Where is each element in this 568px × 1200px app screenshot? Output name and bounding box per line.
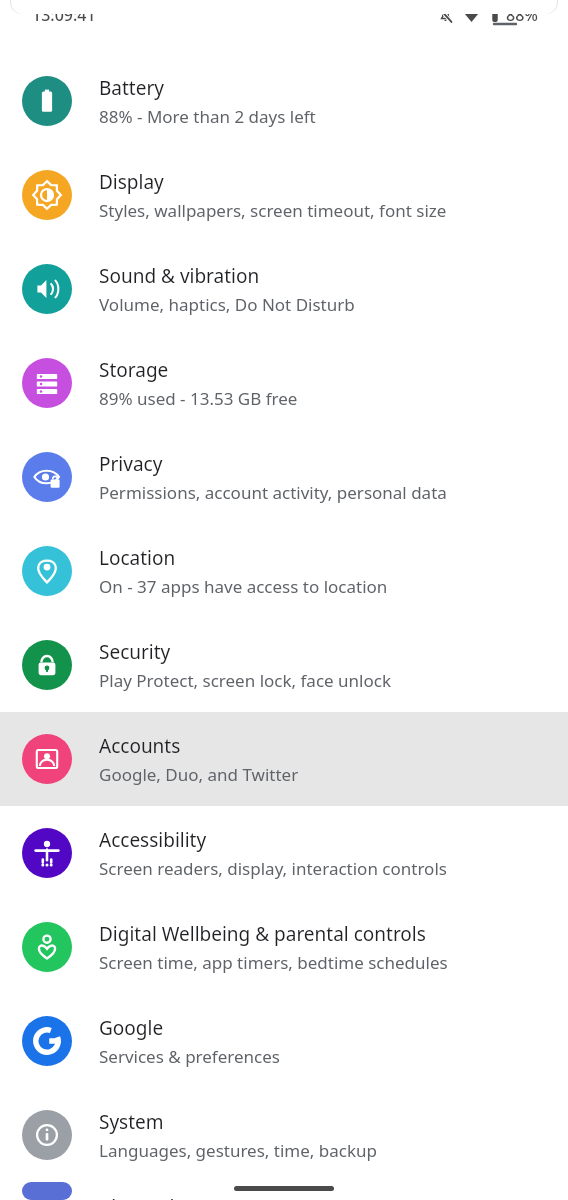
- button[interactable]: Privacy: [0, 430, 568, 524]
- staticText: System: [99, 1109, 164, 1135]
- staticText: Privacy: [99, 451, 163, 477]
- staticText: Screen time, app timers, bedtime schedul…: [99, 951, 448, 974]
- button[interactable]: System: [0, 1088, 568, 1182]
- staticText: Battery: [99, 75, 164, 101]
- staticText: 88%: [506, 4, 538, 26]
- staticText: 88% - More than 2 days left: [99, 105, 316, 128]
- staticText: Languages, gestures, time, backup: [99, 1139, 378, 1162]
- button[interactable]: Location: [0, 524, 568, 618]
- button[interactable]: Battery: [0, 54, 568, 148]
- staticText: Accessibility: [99, 827, 207, 853]
- staticText: Storage: [99, 357, 169, 383]
- button[interactable]: Accessibility: [0, 806, 568, 900]
- button[interactable]: Security: [0, 618, 568, 712]
- staticText: On - 37 apps have access to location: [99, 575, 388, 598]
- staticText: Location: [99, 545, 176, 571]
- staticText: Styles, wallpapers, screen timeout, font…: [99, 199, 447, 222]
- staticText: Permissions, account activity, personal …: [99, 481, 447, 504]
- staticText: Screen readers, display, interaction con…: [99, 857, 447, 880]
- staticText: Google: [99, 1015, 164, 1041]
- staticText: Google, Duo, and Twitter: [99, 763, 299, 786]
- button[interactable]: Accounts: [0, 712, 568, 806]
- staticText: 13:09:41: [32, 4, 96, 26]
- staticText: Security: [99, 639, 171, 665]
- button[interactable]: Digital Wellbeing & parental controls: [0, 900, 568, 994]
- staticText: 89% used - 13.53 GB free: [99, 387, 298, 410]
- button[interactable]: Sound & vibration: [0, 242, 568, 336]
- button[interactable]: About phone: [0, 1182, 568, 1200]
- staticText: Sound & vibration: [99, 263, 260, 289]
- button[interactable]: Google: [0, 994, 568, 1088]
- button[interactable]: Storage: [0, 336, 568, 430]
- staticText: Accounts: [99, 733, 181, 759]
- staticText: Volume, haptics, Do Not Disturb: [99, 293, 355, 316]
- staticText: Digital Wellbeing & parental controls: [99, 921, 426, 947]
- button[interactable]: Display: [0, 148, 568, 242]
- staticText: Play Protect, screen lock, face unlock: [99, 669, 391, 692]
- staticText: Display: [99, 169, 164, 195]
- staticText: Services & preferences: [99, 1045, 280, 1068]
- staticText: About phone: [99, 1194, 216, 1200]
